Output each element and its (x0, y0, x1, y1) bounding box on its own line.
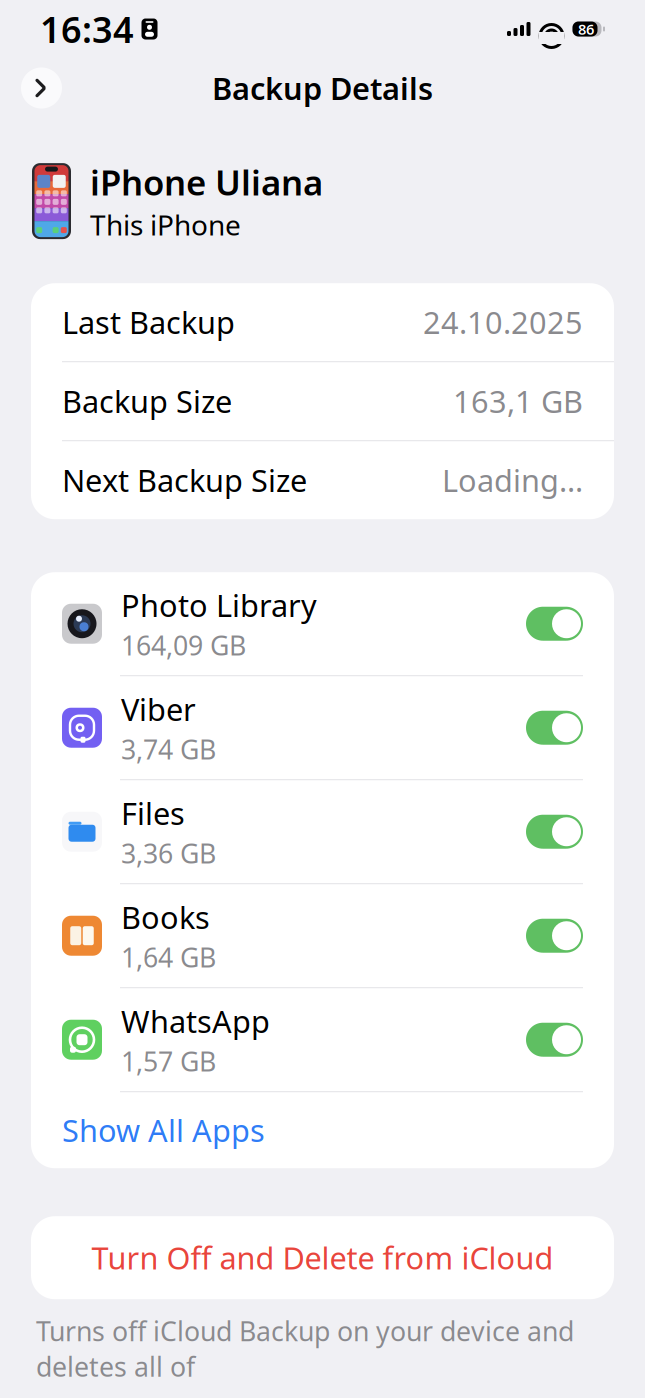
staticText: Files (121, 793, 185, 833)
button[interactable]: Turn Off and Delete from iCloud (31, 1216, 614, 1299)
staticText: 163,1 GB (453, 381, 583, 422)
staticText: Show All Apps (62, 1110, 265, 1151)
button[interactable]: Files (31, 780, 614, 883)
staticText: WhatsApp (121, 1001, 270, 1041)
staticText: Viber (121, 689, 196, 729)
button[interactable]: Back (21, 67, 62, 108)
staticText: Turns off iCloud Backup on your device a… (36, 1313, 574, 1384)
staticText: 16:34 (40, 5, 134, 53)
button[interactable]: Show All Apps (31, 1092, 614, 1168)
staticText: Backup Size (62, 381, 232, 422)
staticText: 24.10.2025 (423, 302, 583, 343)
staticText: iPhone Uliana (90, 159, 323, 205)
staticText: 3,36 GB (121, 835, 216, 871)
button[interactable]: WhatsApp (31, 988, 614, 1091)
staticText: 3,74 GB (121, 731, 216, 767)
button[interactable]: Books (31, 884, 614, 987)
staticText: Loading... (442, 460, 583, 501)
staticText: Photo Library (121, 585, 317, 625)
staticText: Next Backup Size (62, 460, 307, 501)
button[interactable]: Viber (31, 676, 614, 779)
staticText: Turn Off and Delete from iCloud (91, 1237, 553, 1278)
staticText: This iPhone (90, 206, 241, 243)
button[interactable]: Photo Library (31, 572, 614, 675)
staticText: Last Backup (62, 302, 235, 343)
staticText: 1,57 GB (121, 1043, 216, 1079)
staticText: 164,09 GB (121, 627, 246, 663)
staticText: Backup Details (212, 68, 433, 108)
staticText: 1,64 GB (121, 939, 216, 975)
staticText: 86 (578, 19, 594, 39)
staticText: Books (121, 897, 210, 937)
